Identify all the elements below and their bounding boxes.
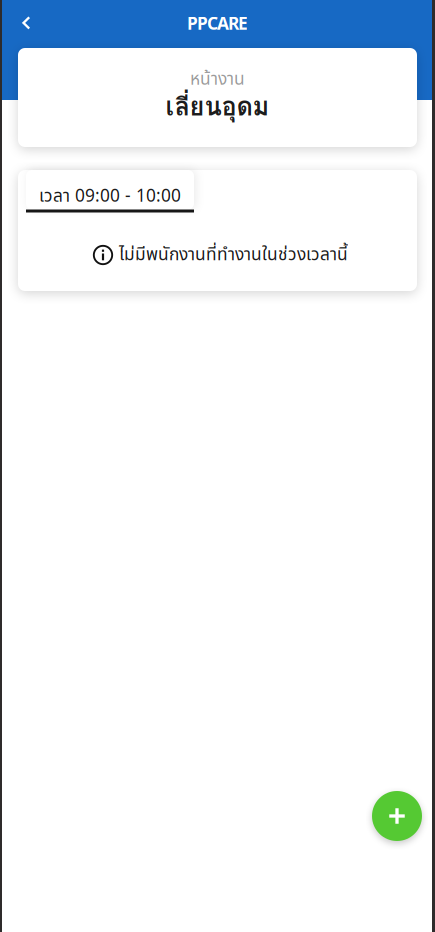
staticText: หน้างาน <box>190 66 245 92</box>
staticText: PPCARE <box>187 11 248 34</box>
button[interactable]: Back <box>0 1 53 45</box>
staticText: เลี่ยนอุดม <box>165 86 269 127</box>
staticText: ไม่มีพนักงานที่ทำงานในช่วงเวลานี้ <box>119 242 348 268</box>
button[interactable]: เวลา 09:00 - 10:00 <box>26 170 194 212</box>
staticText: เวลา 09:00 - 10:00 <box>39 183 181 209</box>
button[interactable]: Add <box>372 791 422 841</box>
